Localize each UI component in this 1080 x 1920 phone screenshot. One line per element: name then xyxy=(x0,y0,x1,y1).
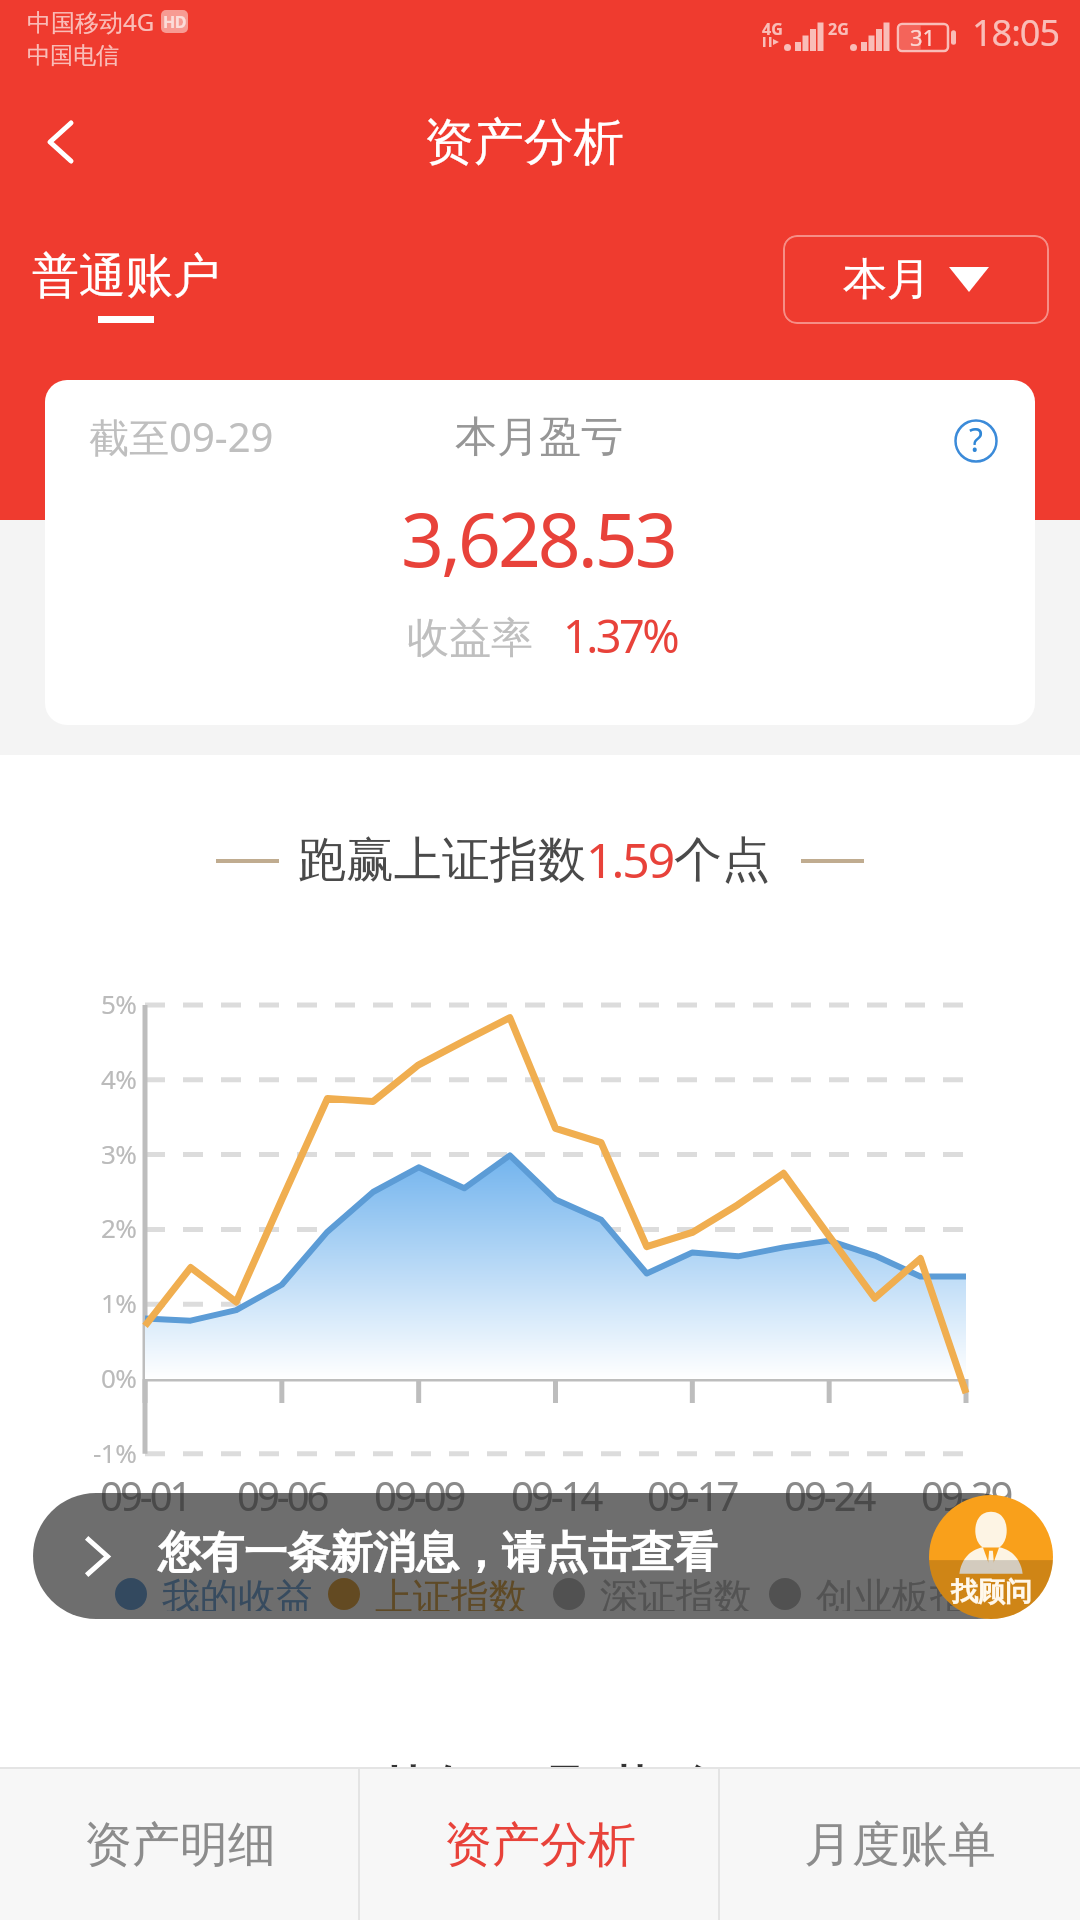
staticText: 09-14 xyxy=(511,1468,601,1522)
staticText: 截至09-29 xyxy=(89,409,274,464)
button[interactable]: 月度账单 xyxy=(720,1769,1080,1920)
staticText: 4G xyxy=(762,18,783,40)
staticText: 收益率 xyxy=(407,612,533,665)
staticText: 31 xyxy=(910,22,936,52)
button[interactable]: 您有一条新消息，请点击查看 xyxy=(33,1493,1040,1619)
staticText: -1% xyxy=(93,1435,137,1470)
staticText: 4% xyxy=(101,1061,137,1096)
button[interactable]: 资产分析 xyxy=(360,1769,720,1920)
button[interactable]: 普通账户 xyxy=(32,247,220,323)
staticText: 持有 5 只 基 金 xyxy=(383,1755,720,1815)
staticText: 0% xyxy=(101,1360,137,1395)
staticText: 2G xyxy=(828,18,849,40)
staticText: 1.37% xyxy=(563,605,678,666)
staticText: 09-17 xyxy=(647,1468,737,1522)
staticText: 09-09 xyxy=(374,1468,464,1522)
staticText: 深证指数 xyxy=(600,1573,752,1611)
staticText: 中国电信 xyxy=(27,41,119,70)
staticText: 3,628.53 xyxy=(401,487,675,589)
staticText: 创业板指 xyxy=(816,1573,968,1611)
button[interactable]: 创业板指 xyxy=(769,1575,968,1613)
button[interactable]: 本月 xyxy=(783,235,1049,324)
staticText: HD xyxy=(163,11,186,33)
staticText: 中国移动4G xyxy=(27,5,155,38)
button[interactable]: 上证指数 xyxy=(328,1575,527,1613)
staticText: 我的收益 xyxy=(162,1573,314,1611)
staticText: 普通账户 xyxy=(32,247,220,306)
staticText: 3% xyxy=(101,1136,137,1171)
staticText: 1% xyxy=(101,1285,137,1320)
staticText: 月度账单 xyxy=(804,1815,996,1875)
staticText: 09-24 xyxy=(784,1468,874,1522)
staticText: 18:05 xyxy=(972,8,1060,57)
button[interactable]: 我的收益 xyxy=(115,1575,314,1613)
staticText: 资产分析 xyxy=(444,1815,636,1875)
button[interactable]: Back xyxy=(16,98,104,186)
staticText: 您有一条新消息，请点击查看 xyxy=(158,1526,717,1580)
staticText: 个点 xyxy=(674,830,770,890)
staticText: 09-06 xyxy=(237,1468,327,1522)
button[interactable]: 深证指数 xyxy=(553,1575,752,1613)
staticText: 资产分析 xyxy=(424,111,624,174)
staticText: 本月盈亏 xyxy=(455,411,623,464)
staticText: 2% xyxy=(101,1210,137,1245)
staticText: 09-29 xyxy=(921,1468,1011,1522)
staticText: 09-01 xyxy=(100,1468,190,1522)
staticText: 跑赢上证指数 xyxy=(298,830,586,890)
staticText: 本月 xyxy=(843,252,931,307)
button[interactable]: 资产明细 xyxy=(0,1769,360,1920)
button[interactable]: Help xyxy=(941,406,1011,476)
staticText: 5% xyxy=(101,986,137,1021)
staticText: ? xyxy=(969,418,983,462)
staticText: 上证指数 xyxy=(375,1573,527,1611)
staticText: 找顾问 xyxy=(951,1575,1032,1609)
button[interactable]: Find advisor xyxy=(929,1495,1053,1619)
staticText: 1.59 xyxy=(586,827,674,892)
staticText: 资产明细 xyxy=(84,1815,276,1875)
